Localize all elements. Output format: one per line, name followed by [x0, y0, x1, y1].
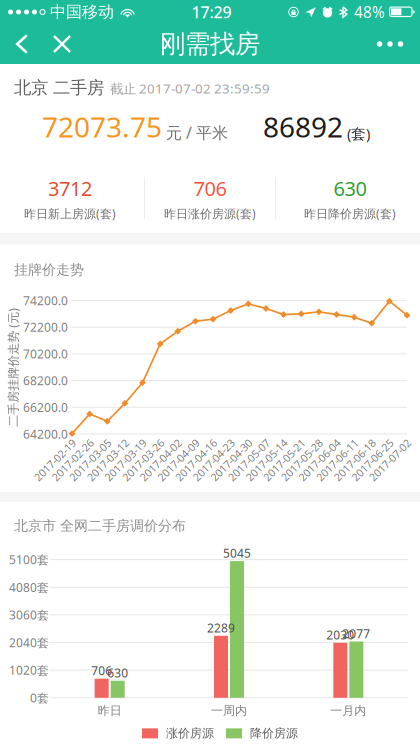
staticText: 2077 [342, 625, 370, 641]
staticText: 元 / 平米 [166, 122, 228, 143]
staticText: 4080套 [9, 579, 49, 595]
staticText: 涨价房源 [166, 726, 214, 741]
button[interactable]: 返回 [4, 24, 40, 64]
staticText: 中国移动 [50, 2, 114, 22]
staticText: 64200.0 [23, 426, 68, 442]
staticText: 630 [333, 175, 366, 202]
staticText: 630 [107, 665, 128, 681]
staticText: 706 [91, 663, 112, 679]
staticText: 2017-04-30 [204, 453, 258, 467]
staticText: 2017-03-26 [116, 453, 170, 467]
staticText: 2289 [207, 620, 235, 636]
staticText: 66200.0 [23, 399, 68, 415]
button[interactable]: 关闭 [40, 24, 84, 64]
staticText: 2017-03-19 [98, 453, 152, 467]
staticText: 2017-07-02 [363, 453, 417, 467]
staticText: 86892 [263, 108, 343, 145]
staticText: 2017-06-04 [292, 453, 346, 467]
staticText: 刚需找房 [160, 28, 260, 60]
staticText: 昨日降价房源(套) [304, 206, 396, 221]
staticText: 706 [193, 175, 226, 202]
staticText: 2040套 [9, 635, 49, 650]
staticText: 2017-02-26 [46, 453, 100, 467]
staticText: 48% [354, 2, 385, 22]
staticText: 昨日 [98, 703, 122, 718]
staticText: 3060套 [9, 607, 49, 623]
staticText: 2017-04-16 [169, 453, 223, 467]
staticText: 2017-04-09 [151, 453, 205, 467]
staticText: 2017-05-14 [240, 453, 294, 467]
staticText: 挂牌价走势 [14, 261, 84, 279]
staticText: 68200.0 [23, 373, 68, 388]
staticText: 74200.0 [23, 292, 68, 308]
staticText: 2030 [326, 627, 354, 643]
staticText: 降价房源 [250, 726, 298, 741]
staticText: 2017-06-11 [310, 453, 364, 467]
staticText: 2017-05-21 [257, 453, 311, 467]
staticText: 72200.0 [23, 319, 68, 335]
staticText: 3712 [48, 175, 92, 202]
staticText: (套) [347, 124, 370, 143]
staticText: 72073.75 [42, 108, 162, 145]
staticText: 17:29 [191, 1, 231, 23]
staticText: 1020套 [9, 662, 49, 678]
staticText: 一周内 [211, 703, 247, 718]
staticText: 0套 [30, 690, 49, 706]
staticText: 2017-06-25 [345, 453, 399, 467]
staticText: 昨日涨价房源(套) [164, 206, 256, 221]
staticText: 2017-04-23 [187, 453, 241, 467]
staticText: 一月内 [330, 703, 366, 718]
staticText: 2017-06-18 [328, 453, 382, 467]
staticText: 2017-03-05 [63, 453, 117, 467]
staticText: 昨日新上房源(套) [24, 206, 116, 221]
staticText: 北京 二手房 [14, 77, 104, 98]
staticText: 北京市 全网二手房调价分布 [14, 517, 186, 535]
button[interactable]: 更多 [366, 24, 414, 64]
staticText: 截止 2017-07-02 23:59:59 [110, 80, 270, 97]
staticText: 2017-05-07 [222, 453, 276, 467]
staticText: 2017-05-28 [275, 453, 329, 467]
staticText: 二手房挂牌价走势 (元) [0, 359, 72, 375]
staticText: 5100套 [9, 552, 49, 567]
staticText: 2017-03-12 [81, 453, 135, 467]
staticText: 70200.0 [23, 346, 68, 362]
staticText: 5045 [223, 545, 251, 561]
staticText: 2017-04-02 [134, 453, 188, 467]
staticText: 2017-02-19 [28, 453, 82, 467]
